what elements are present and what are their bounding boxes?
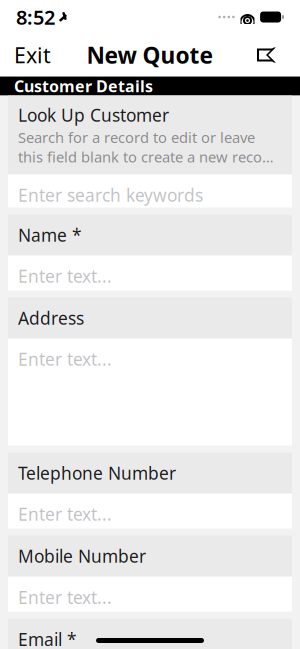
staticText: Address: [18, 307, 84, 330]
button[interactable]: Enter search keywords: [8, 175, 292, 208]
staticText: Look Up Customer: [18, 104, 169, 127]
button[interactable]: Enter text...: [8, 577, 292, 612]
staticText: Enter text...: [18, 265, 112, 288]
staticText: Search for a record to edit or leave thi…: [18, 128, 274, 167]
button[interactable]: Exit: [0, 34, 65, 76]
staticText: Name *: [18, 224, 82, 247]
staticText: Customer Details: [14, 75, 153, 97]
staticText: Telephone Number: [18, 462, 176, 485]
staticText: Enter text...: [18, 503, 112, 526]
staticText: Mobile Number: [18, 545, 146, 568]
staticText: Enter text...: [18, 348, 112, 371]
button[interactable]: Next: [242, 34, 300, 76]
staticText: Exit: [14, 41, 51, 69]
staticText: Email *: [18, 628, 77, 649]
staticText: Enter search keywords: [18, 184, 203, 207]
staticText: New Quote: [86, 40, 213, 70]
button[interactable]: Enter text...: [8, 494, 292, 529]
staticText: Enter text...: [18, 586, 112, 609]
button[interactable]: Enter text...: [8, 339, 292, 446]
staticText: 8:52: [16, 4, 55, 30]
button[interactable]: Enter text...: [8, 256, 292, 291]
